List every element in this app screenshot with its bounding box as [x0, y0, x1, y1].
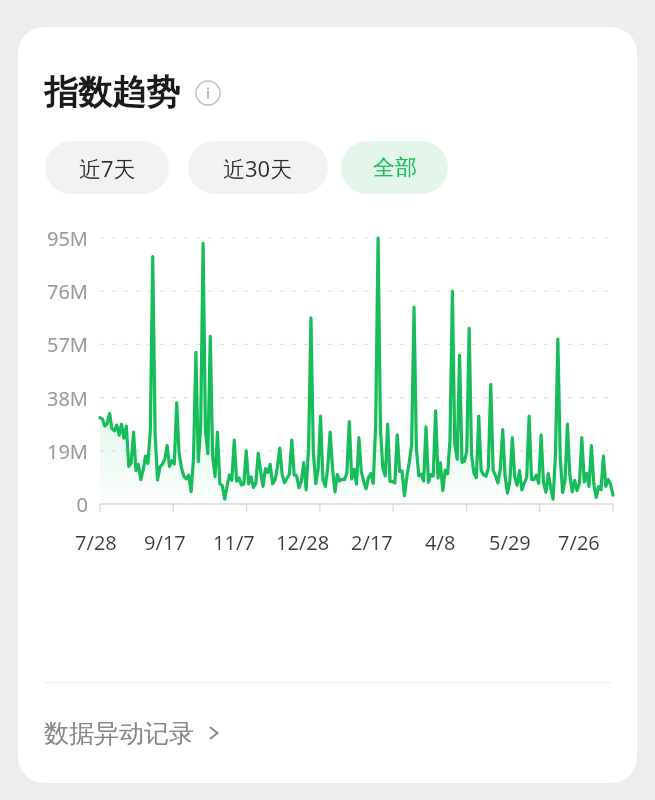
button[interactable]: 指数趋势: [44, 71, 222, 114]
staticText: 95M: [32, 225, 88, 252]
staticText: 近7天: [79, 153, 136, 183]
staticText: 76M: [32, 278, 88, 305]
staticText: 7/26: [558, 529, 600, 556]
staticText: 19M: [32, 438, 88, 465]
staticText: 全部: [373, 154, 417, 182]
button[interactable]: 数据异动记录: [18, 683, 637, 783]
staticText: 5/29: [489, 529, 531, 556]
button[interactable]: 近30天: [188, 141, 328, 194]
staticText: 指数趋势: [44, 71, 180, 114]
staticText: 57M: [32, 331, 88, 358]
staticText: 9/17: [144, 529, 186, 556]
staticText: 0: [32, 491, 88, 518]
staticText: 近30天: [223, 153, 293, 183]
staticText: 数据异动记录: [44, 718, 194, 749]
button[interactable]: 近7天: [45, 141, 169, 194]
button[interactable]: Info: [194, 79, 222, 107]
button[interactable]: 全部: [341, 141, 448, 194]
staticText: 12/28: [276, 529, 330, 556]
staticText: 4/8: [425, 529, 456, 556]
staticText: 11/7: [213, 529, 255, 556]
staticText: 2/17: [351, 529, 393, 556]
staticText: 7/28: [75, 529, 117, 556]
staticText: 38M: [32, 385, 88, 412]
